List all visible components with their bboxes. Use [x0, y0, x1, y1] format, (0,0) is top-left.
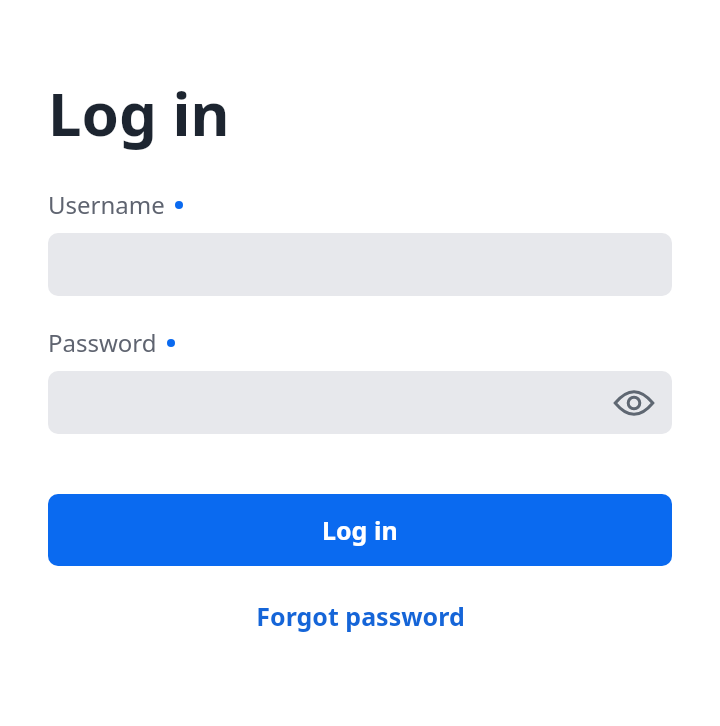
staticText: Log in	[322, 513, 398, 547]
button[interactable]: Show password	[612, 381, 656, 425]
button[interactable]: Log in	[48, 494, 672, 566]
staticText: Username	[48, 188, 165, 221]
button[interactable]: Forgot password	[48, 594, 672, 638]
staticText: Log in	[48, 72, 230, 154]
staticText: Forgot password	[256, 599, 465, 633]
staticText: Password	[48, 326, 157, 359]
